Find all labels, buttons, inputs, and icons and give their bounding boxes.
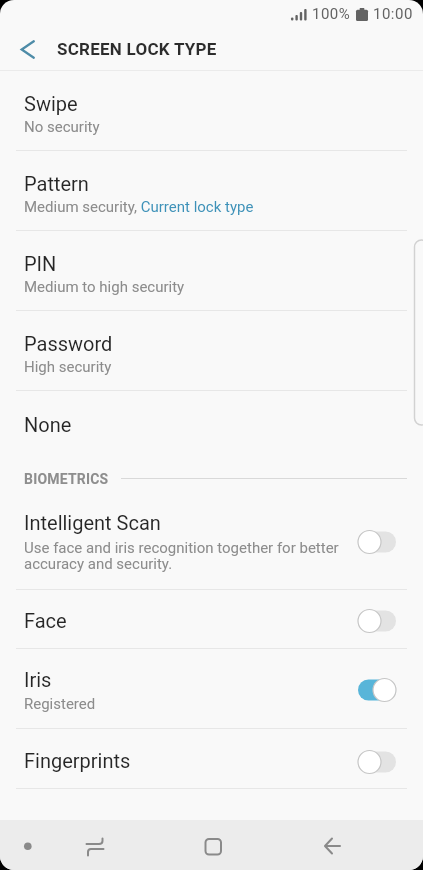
staticText: Face <box>24 609 67 632</box>
staticText: Registered <box>24 695 96 713</box>
staticText: Password <box>24 332 113 355</box>
staticText: Use face and iris recognition together f… <box>24 539 339 573</box>
button[interactable] <box>356 529 398 555</box>
staticText: Intelligent Scan <box>24 511 161 534</box>
staticText: Swipe <box>24 92 78 115</box>
staticText: Pattern <box>24 172 89 195</box>
staticText: Fingerprints <box>24 749 131 772</box>
button[interactable] <box>0 28 50 70</box>
button[interactable]: PIN <box>0 231 423 310</box>
button[interactable]: Pattern <box>0 151 423 230</box>
staticText: 100% <box>312 5 351 23</box>
staticText: Iris <box>24 668 52 691</box>
staticText: 10:00 <box>373 5 413 23</box>
button[interactable]: Fingerprints <box>0 729 423 788</box>
button[interactable]: Password <box>0 311 423 390</box>
staticText: High security <box>24 358 112 376</box>
button[interactable]: Face <box>0 590 423 648</box>
button[interactable] <box>356 749 398 775</box>
staticText: PIN <box>24 252 57 275</box>
button[interactable] <box>356 677 398 703</box>
button[interactable] <box>301 820 361 870</box>
button[interactable] <box>183 820 243 870</box>
button[interactable]: None <box>0 391 423 455</box>
staticText: SCREEN LOCK TYPE <box>57 39 217 59</box>
button[interactable] <box>356 608 398 634</box>
button[interactable] <box>8 820 48 870</box>
button[interactable]: Swipe <box>0 71 423 150</box>
staticText: None <box>24 413 72 436</box>
staticText: Medium to high security <box>24 278 185 296</box>
staticText: BIOMETRICS <box>24 471 109 487</box>
staticText: Medium security, Current lock type <box>24 198 254 216</box>
button[interactable]: Intelligent Scan <box>0 495 423 589</box>
staticText: No security <box>24 118 100 136</box>
button[interactable]: Iris <box>0 649 423 728</box>
button[interactable] <box>65 820 125 870</box>
